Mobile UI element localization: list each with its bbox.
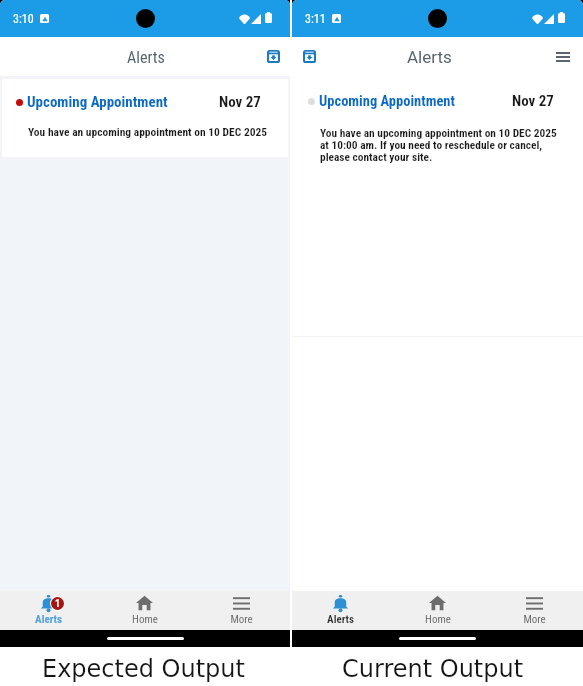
staticText: 3:11: [305, 12, 326, 26]
button[interactable]: Home: [389, 591, 486, 630]
staticText: Home: [132, 613, 158, 626]
staticText: You have an upcoming appointment on 10 D…: [28, 125, 268, 138]
staticText: More: [230, 613, 253, 626]
button[interactable]: Archive: [259, 43, 287, 71]
button[interactable]: Home: [96, 591, 193, 630]
staticText: More: [523, 613, 546, 626]
staticText: Upcoming Appointment: [27, 93, 168, 111]
staticText: Nov 27: [219, 93, 261, 111]
staticText: Expected Output: [42, 655, 245, 683]
staticText: 1: [55, 598, 61, 610]
staticText: Alerts: [327, 613, 354, 626]
staticText: Alerts: [127, 48, 165, 67]
staticText: Current Output: [342, 655, 524, 683]
button[interactable]: More: [486, 591, 583, 630]
button[interactable]: Archive: [295, 43, 323, 71]
button[interactable]: Upcoming Appointment: [292, 76, 583, 337]
staticText: Alerts: [407, 47, 452, 67]
staticText: Nov 27: [512, 92, 554, 110]
staticText: Upcoming Appointment: [319, 93, 455, 110]
button[interactable]: Alerts: [292, 591, 389, 630]
button[interactable]: Upcoming Appointment: [2, 79, 288, 157]
staticText: 3:10: [13, 12, 34, 26]
staticText: You have an upcoming appointment on 10 D…: [320, 126, 557, 163]
staticText: Home: [425, 613, 451, 626]
button[interactable]: 1: [0, 591, 96, 630]
button[interactable]: More: [193, 591, 290, 630]
button[interactable]: Menu: [549, 43, 577, 71]
staticText: Alerts: [35, 613, 62, 626]
